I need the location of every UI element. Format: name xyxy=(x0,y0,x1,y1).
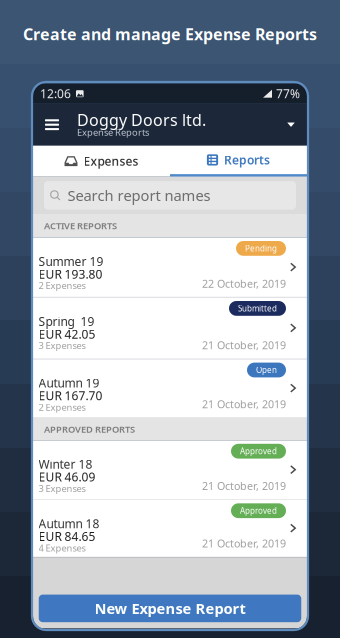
staticText: Doggy Doors ltd. xyxy=(77,109,206,130)
button[interactable]: New Expense Report xyxy=(39,595,301,622)
staticText: Expense Reports xyxy=(77,126,149,138)
staticText: Open xyxy=(256,365,277,375)
staticText: EUR 84.65 xyxy=(38,528,95,544)
staticText: 77% xyxy=(276,86,300,102)
button[interactable]: Summer 19 xyxy=(33,237,307,297)
button[interactable]: Switch company xyxy=(281,104,301,146)
staticText: EUR 193.80 xyxy=(38,266,102,282)
staticText: ACTIVE REPORTS xyxy=(44,220,117,232)
staticText: Autumn 18 xyxy=(38,516,99,531)
button[interactable]: Autumn 18 xyxy=(33,500,307,557)
staticText: 21 October, 2019 xyxy=(202,479,286,493)
staticText: 2 Expenses xyxy=(38,401,85,413)
staticText: APPROVED REPORTS xyxy=(44,423,135,435)
staticText: 12:06 xyxy=(40,86,71,102)
staticText: 2 Expenses xyxy=(38,279,85,292)
staticText: 21 October, 2019 xyxy=(202,397,286,411)
staticText: Create and manage Expense Reports xyxy=(23,23,317,45)
staticText: Submitted xyxy=(238,303,277,314)
staticText: EUR 46.09 xyxy=(38,469,95,485)
staticText: 3 Expenses xyxy=(38,339,85,352)
button[interactable]: Spring 19 xyxy=(33,297,307,359)
staticText: Expenses xyxy=(83,153,138,169)
staticText: Pending xyxy=(245,243,277,254)
staticText: EUR 42.05 xyxy=(38,326,95,342)
staticText: Summer 19 xyxy=(38,253,103,269)
staticText: Autumn 19 xyxy=(38,375,99,391)
staticText: 21 October, 2019 xyxy=(202,338,286,352)
button[interactable]: Menu xyxy=(39,104,65,146)
staticText: EUR 167.70 xyxy=(38,388,102,403)
staticText: 3 Expenses xyxy=(38,482,85,494)
staticText: Spring 19 xyxy=(38,313,94,329)
staticText: 4 Expenses xyxy=(38,542,85,554)
button[interactable]: Expenses xyxy=(33,146,170,177)
button[interactable]: Search report names xyxy=(33,177,307,214)
staticText: 21 October, 2019 xyxy=(202,536,286,550)
staticText: 22 October, 2019 xyxy=(202,276,286,291)
button[interactable]: Reports xyxy=(170,146,307,177)
staticText: Approved xyxy=(240,505,277,516)
staticText: Search report names xyxy=(67,186,210,205)
staticText: Reports xyxy=(224,152,270,168)
staticText: New Expense Report xyxy=(94,599,245,618)
staticText: Approved xyxy=(240,446,277,456)
button[interactable]: Winter 18 xyxy=(33,440,307,500)
staticText: Winter 18 xyxy=(38,456,92,472)
button[interactable]: Autumn 19 xyxy=(33,359,307,418)
